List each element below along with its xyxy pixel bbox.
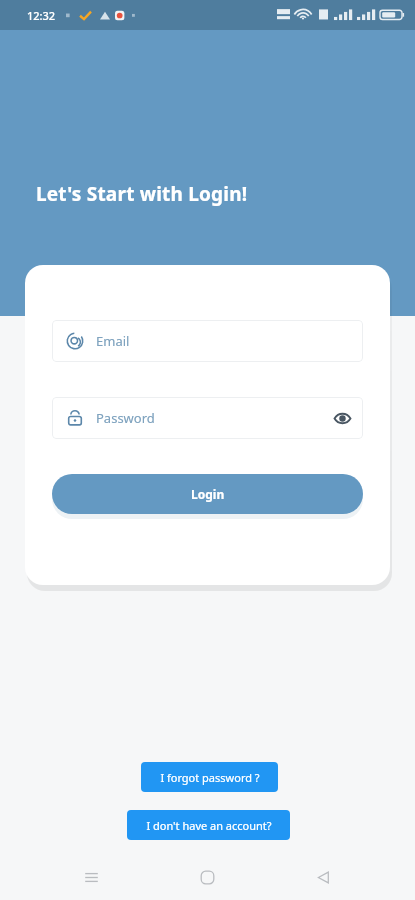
- button[interactable]: I don't have an account?: [127, 810, 290, 840]
- button[interactable]: Login: [52, 474, 363, 514]
- staticText: Email: [96, 332, 130, 350]
- button[interactable]: Back: [299, 855, 347, 900]
- staticText: Password: [96, 409, 155, 427]
- staticText: 12:32: [27, 8, 56, 23]
- button[interactable]: Home: [183, 855, 231, 900]
- staticText: I forgot password ?: [160, 770, 260, 785]
- staticText: Login: [191, 486, 225, 502]
- button[interactable]: Show password: [325, 401, 359, 435]
- staticText: I don't have an account?: [146, 818, 272, 833]
- button[interactable]: I forgot password ?: [141, 762, 278, 792]
- button[interactable]: Email field: [52, 320, 363, 362]
- button[interactable]: Recent apps: [67, 855, 115, 900]
- staticText: Let's Start with Login!: [36, 181, 248, 207]
- button[interactable]: Password field: [52, 397, 363, 439]
